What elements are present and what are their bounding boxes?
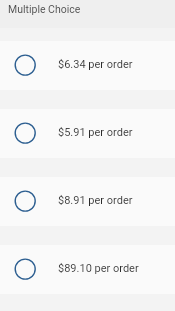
staticText: Multiple Choice	[8, 3, 81, 15]
other: Not selected	[13, 54, 37, 78]
staticText: $5.91 per order	[58, 126, 133, 139]
button[interactable]: Not selected	[0, 41, 175, 90]
button[interactable]: Not selected	[0, 245, 175, 294]
button[interactable]: Not selected	[0, 109, 175, 158]
other: Not selected	[13, 122, 37, 146]
staticText: $6.34 per order	[58, 58, 133, 71]
other: Not selected	[13, 190, 37, 214]
other: Not selected	[13, 258, 37, 282]
button[interactable]: Not selected	[0, 177, 175, 226]
staticText: $89.10 per order	[58, 262, 139, 275]
staticText: $8.91 per order	[58, 194, 133, 207]
